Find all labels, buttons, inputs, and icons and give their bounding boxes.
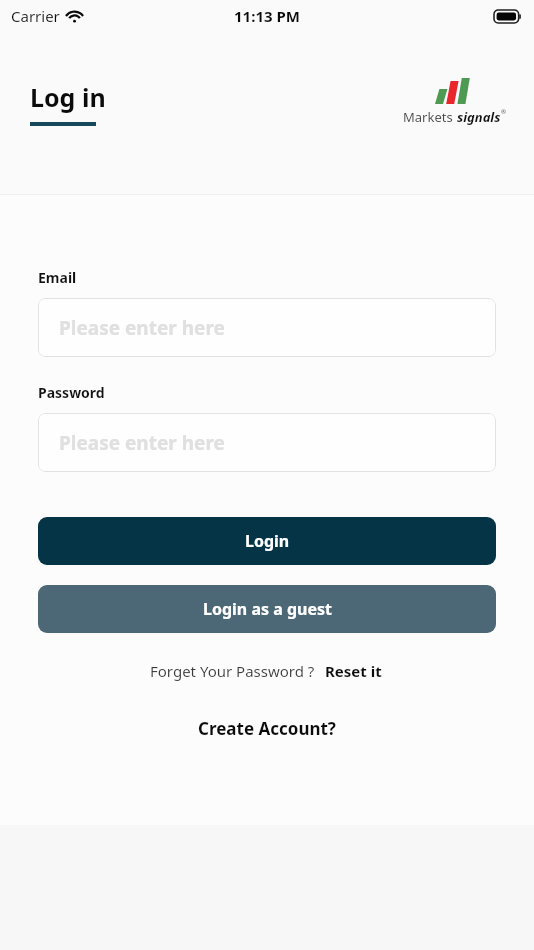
- button[interactable]: Login: [38, 517, 496, 565]
- staticText: Please enter here: [59, 430, 225, 456]
- button[interactable]: Please enter here: [38, 413, 496, 472]
- staticText: Log in: [30, 80, 106, 114]
- staticText: Login: [245, 530, 290, 552]
- staticText: ®: [501, 108, 506, 116]
- staticText: Forget Your Password ?: [150, 661, 315, 681]
- button[interactable]: Create Account?: [190, 713, 344, 744]
- staticText: Carrier: [11, 6, 60, 26]
- staticText: 11:13 PM: [234, 6, 300, 26]
- staticText: Password: [38, 383, 105, 402]
- staticText: Please enter here: [59, 315, 225, 341]
- button[interactable]: Reset it: [323, 659, 384, 683]
- button[interactable]: Login as a guest: [38, 585, 496, 633]
- staticText: Markets: [403, 108, 457, 126]
- staticText: signals: [457, 108, 501, 126]
- button[interactable]: Please enter here: [38, 298, 496, 357]
- staticText: Create Account?: [198, 717, 336, 740]
- staticText: Reset it: [325, 661, 382, 681]
- staticText: Email: [38, 268, 77, 287]
- staticText: Login as a guest: [203, 598, 332, 620]
